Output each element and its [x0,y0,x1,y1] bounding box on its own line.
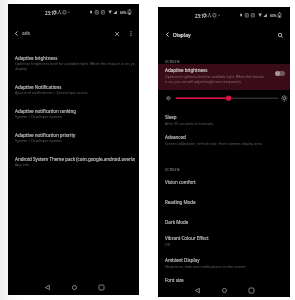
button[interactable]: Back [8,26,139,40]
staticText: Sleep [165,114,177,120]
staticText: Optimise brightness level for available … [15,61,135,71]
button[interactable]: Dark Mode [158,219,290,225]
button[interactable]: Back [188,284,206,296]
staticText: System > Developer options [15,138,63,143]
button[interactable]: More options [126,29,135,38]
staticText: ads [22,30,30,37]
staticText: 23:17 [195,13,207,19]
staticText: Adaptive notification ranking [15,108,77,114]
staticText: SCREEN [165,167,180,172]
other: Back [13,30,20,37]
staticText: Screen calibration, refresh rate, front … [165,141,262,146]
staticText: Off [165,242,171,247]
staticText: Adaptive Notifications [15,84,62,90]
staticText: Advanced [165,134,186,140]
staticText: Ambient Display [165,257,200,263]
staticText: Adaptive brightness [15,55,58,61]
staticText: Vision comfort [165,179,196,185]
staticText: System > Developer options [15,114,63,119]
staticText: Show time, date and notifications on the… [165,264,246,269]
button[interactable]: Back [158,27,290,42]
other: Back [164,31,171,38]
staticText: App info [15,162,30,167]
button[interactable]: Clear search [112,29,121,38]
button[interactable]: Home [215,284,233,296]
button[interactable]: Search [275,30,285,40]
button[interactable]: Advanced [158,134,290,146]
button[interactable]: Recents [92,281,110,293]
button[interactable]: Adaptive notification priority [8,132,139,143]
button[interactable]: Back [38,281,56,293]
button[interactable]: Reading Mode [158,199,290,205]
staticText: 23:17 [45,10,57,16]
staticText: 60% [120,11,127,15]
staticText: SCREEN [165,59,180,64]
button[interactable]: Home [65,281,83,293]
button[interactable]: Android System Theme pack (com.google.an… [8,156,139,167]
staticText: Android System Theme pack (com.google.an… [15,156,135,162]
staticText: Adaptive brightness [165,67,208,73]
button[interactable]: Adaptive brightness [158,64,290,90]
button[interactable]: Font size [158,277,290,283]
button[interactable]: Adaptive Notifications [8,84,139,95]
button[interactable]: Sleep [158,114,290,126]
staticText: Dark Mode [165,219,189,225]
button[interactable]: Ambient Display [158,257,290,269]
staticText: Vibrant Colour Effect [165,235,209,241]
staticText: Optimise brightness level for available … [165,74,265,84]
button[interactable]: Adaptive brightness [8,55,139,71]
staticText: 60% [270,14,277,18]
button[interactable]: Adaptive notification ranking [8,108,139,119]
staticText: Reading Mode [165,199,196,205]
button[interactable]: Recents [242,284,260,296]
staticText: Display [173,31,191,38]
staticText: After 30 seconds of inactivity [165,121,214,126]
button[interactable]: Vibrant Colour Effect [158,235,290,247]
staticText: Adaptive notification priority [15,132,76,138]
button[interactable]: Vision comfort [158,179,290,185]
staticText: Font size [165,277,184,283]
staticText: Apps and notifications > Special app acc… [15,90,88,95]
